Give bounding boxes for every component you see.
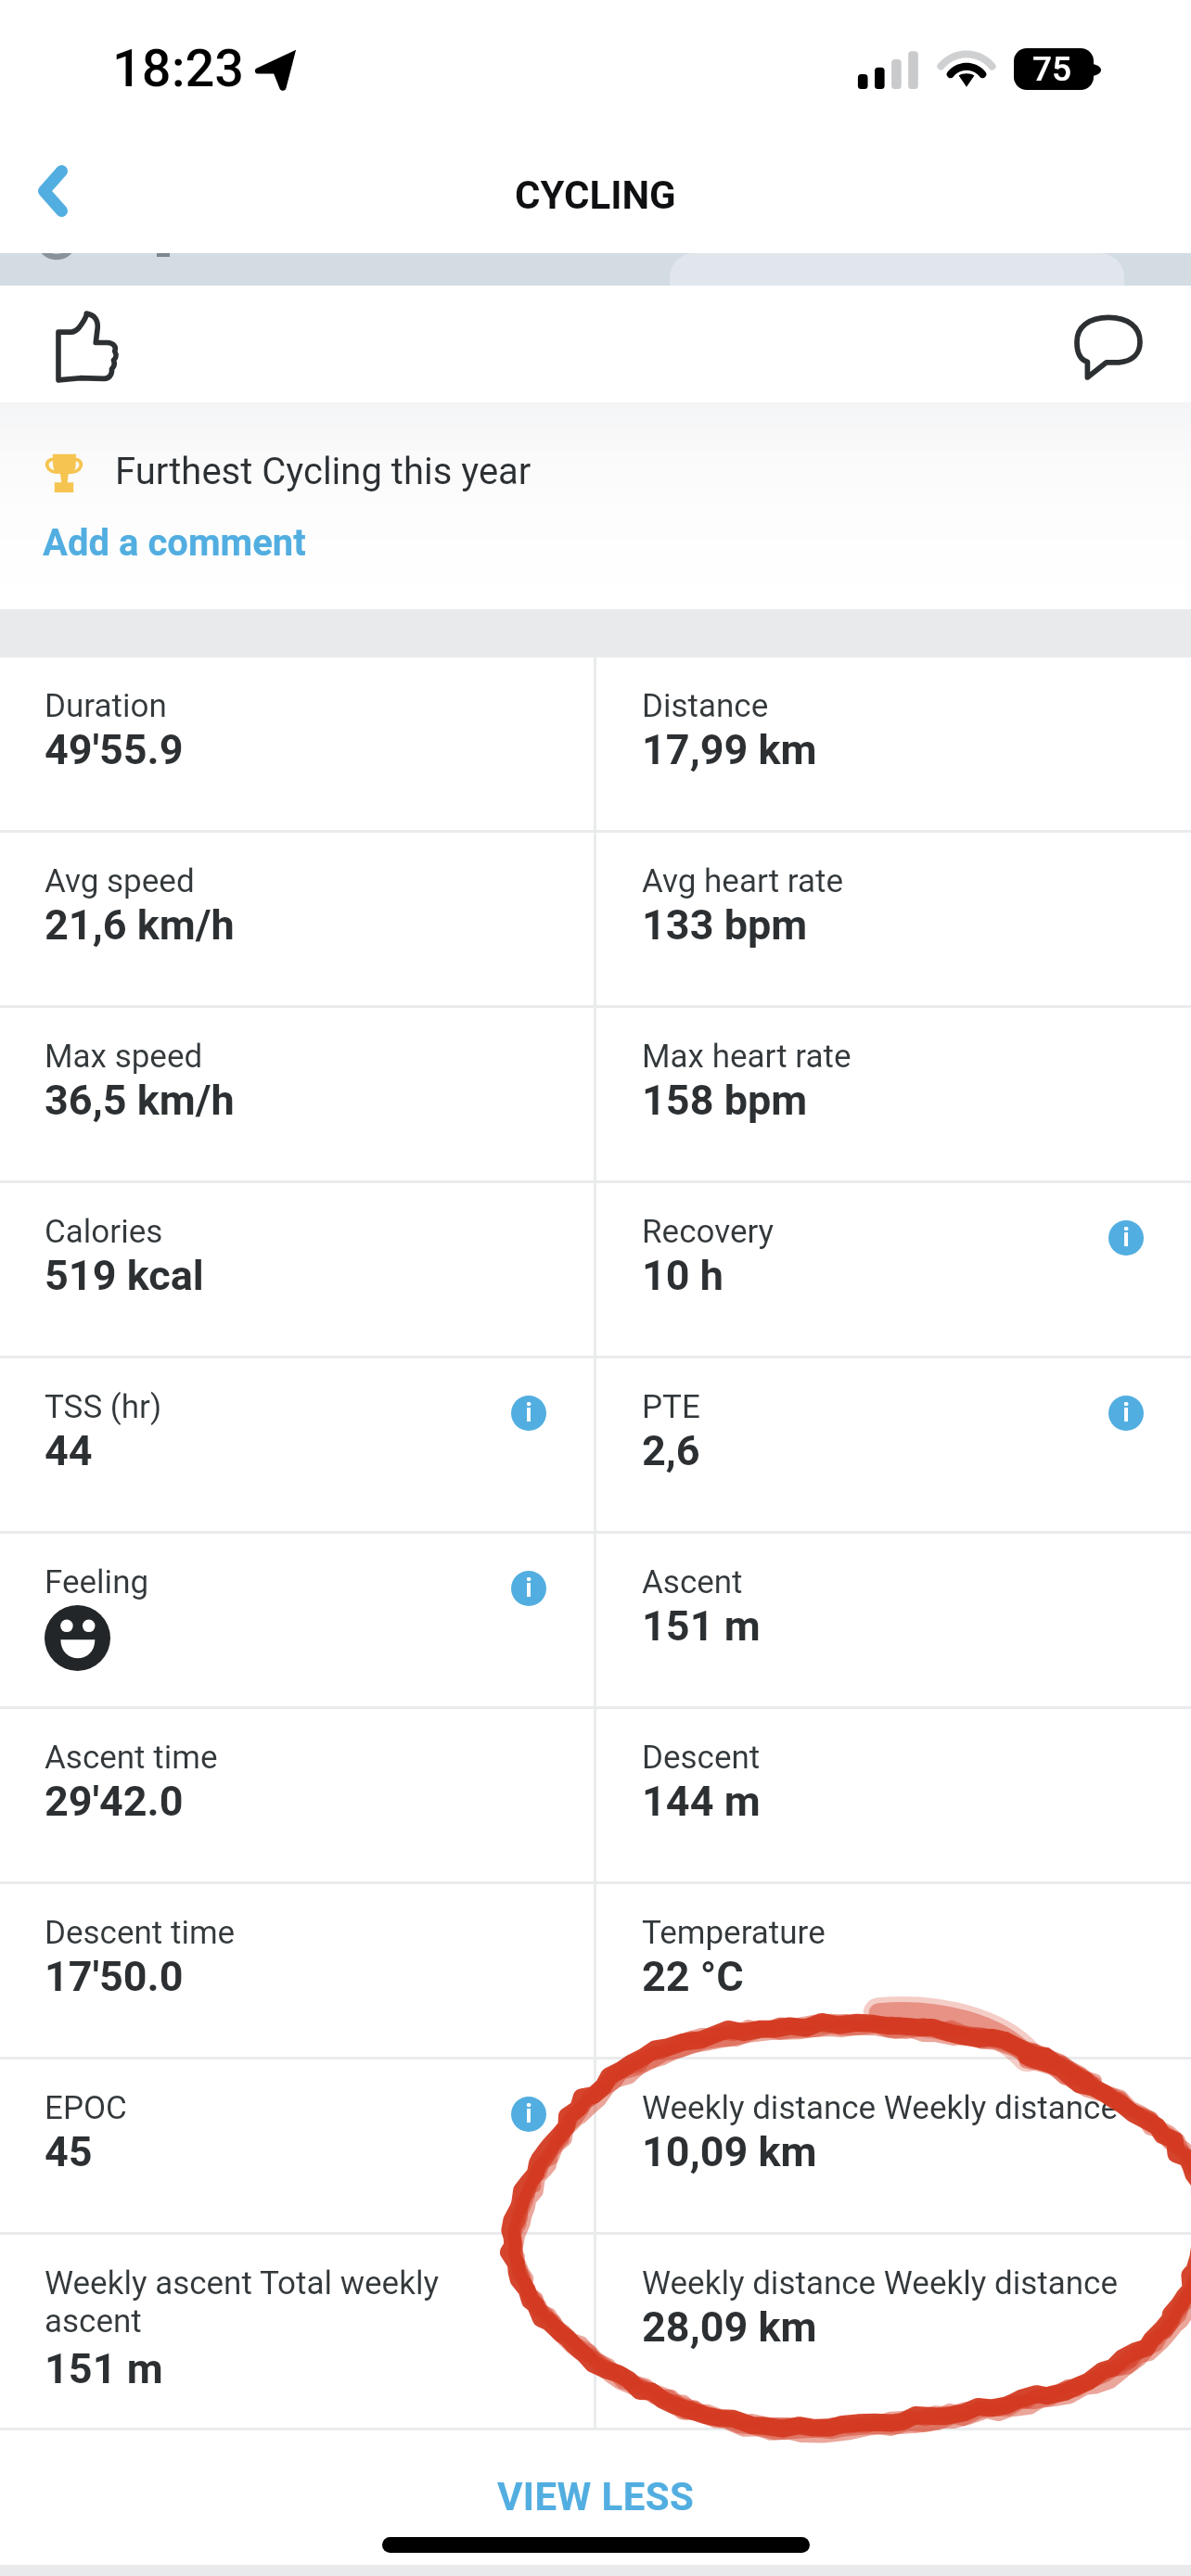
staticText: Max speed [45,1038,538,1076]
button[interactable]: More information [504,1563,554,1613]
staticText: Feeling [45,1563,538,1601]
staticText: PTE [642,1388,1135,1426]
button[interactable]: Like [35,301,137,392]
staticText: Duration [45,687,538,725]
button[interactable]: Feeling [0,1534,594,1706]
staticText: Avg heart rate [642,862,1135,900]
button[interactable]: More information [1101,1213,1151,1263]
staticText: Weekly distance Weekly distance [642,2264,1135,2302]
staticText: EPOC [45,2089,538,2127]
staticText: Descent [642,1739,1135,1777]
button[interactable]: Weekly ascent Total weekly ascent [0,2235,594,2428]
button[interactable]: Temperature [597,1884,1191,2057]
staticText: 17,99 km [642,725,817,774]
staticText: Descent time [45,1914,538,1952]
button[interactable]: Avg heart rate [597,833,1191,1005]
button[interactable]: Avg speed [0,833,594,1005]
staticText: 144 m [642,1777,761,1826]
button[interactable]: Comment [1049,301,1160,392]
staticText: 151 m [642,1601,761,1651]
staticText: 45 [45,2127,93,2176]
button[interactable]: Weekly distance Weekly distance [597,2060,1191,2232]
staticText: Temperature [642,1914,1135,1952]
button[interactable]: Recovery [597,1183,1191,1356]
staticText: 29'42.0 [45,1777,184,1826]
staticText: 158 bpm [642,1076,808,1125]
button[interactable]: EPOC [0,2060,594,2232]
button[interactable]: Ascent time [0,1709,594,1881]
button[interactable]: Max heart rate [597,1008,1191,1180]
button[interactable]: Descent [597,1709,1191,1881]
button[interactable]: Weekly distance Weekly distance [597,2235,1191,2428]
button[interactable]: Descent time [0,1884,594,2057]
button[interactable]: Max speed [0,1008,594,1180]
button[interactable]: Add a comment [28,512,399,573]
staticText: Ascent time [45,1739,538,1777]
staticText: 10 h [642,1251,724,1300]
button[interactable]: Furthest Cycling this year [41,436,616,506]
staticText: Ascent [642,1563,1135,1601]
staticText: Weekly ascent Total weekly ascent [45,2264,538,2340]
staticText: 133 bpm [642,900,808,950]
staticText: 49'55.9 [45,725,184,774]
staticText: 36,5 km/h [45,1076,235,1125]
button[interactable]: Calories [0,1183,594,1356]
staticText: 22 °C [642,1952,744,2001]
staticText: i [525,1574,532,1603]
staticText: TSS (hr) [45,1388,538,1426]
button[interactable]: TSS (hr) [0,1358,594,1531]
button[interactable]: More information [504,1388,554,1438]
button[interactable]: Duration [0,657,594,830]
button[interactable]: Distance [597,657,1191,830]
staticText: 17'50.0 [45,1952,184,2001]
staticText: 10,09 km [642,2127,817,2176]
staticText: 75 [1032,49,1072,89]
staticText: Furthest Cycling this year [115,450,531,493]
staticText: Add a comment [43,521,306,565]
staticText: i [1122,1398,1130,1428]
staticText: 18:23 [112,38,245,99]
staticText: Weekly distance Weekly distance [642,2089,1135,2127]
staticText: 21,6 km/h [45,900,235,950]
staticText: VIEW LESS [497,2474,695,2519]
staticText: Recovery [642,1213,1135,1251]
button[interactable]: More information [504,2089,554,2139]
button[interactable]: PTE [597,1358,1191,1531]
staticText: CYCLING [515,172,676,218]
staticText: Calories [45,1213,538,1251]
staticText: Avg speed [45,862,538,900]
staticText: 151 m [45,2344,163,2393]
staticText: i [525,2099,532,2129]
staticText: 2,6 [642,1426,700,1475]
staticText: 28,09 km [642,2302,817,2352]
button[interactable]: Back [9,147,96,235]
staticText: Distance [642,687,1135,725]
staticText: 519 kcal [45,1251,204,1300]
staticText: Max heart rate [642,1038,1135,1076]
staticText: 44 [45,1426,93,1475]
button[interactable]: More information [1101,1388,1151,1438]
staticText: i [525,1398,532,1428]
button[interactable]: Ascent [597,1534,1191,1706]
staticText: i [1122,1223,1130,1253]
button[interactable]: VIEW LESS [0,2430,1191,2532]
